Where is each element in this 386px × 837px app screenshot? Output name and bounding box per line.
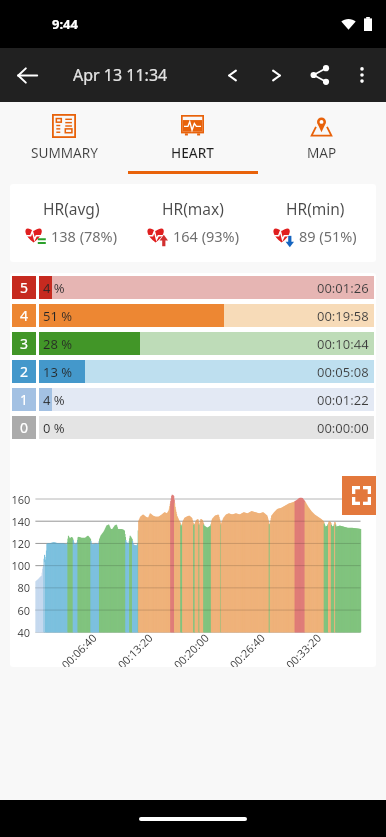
- staticText: 00:00:00: [317, 419, 369, 437]
- button[interactable]: Previous: [210, 53, 254, 97]
- staticText: 00:01:26: [317, 279, 369, 297]
- staticText: 00:05:08: [317, 363, 369, 381]
- staticText: 1: [20, 390, 29, 409]
- staticText: 138 (78%): [51, 226, 117, 246]
- staticText: Apr 13 11:34: [73, 64, 168, 86]
- button[interactable]: HEART: [128, 99, 257, 173]
- button[interactable]: Next: [254, 53, 298, 97]
- staticText: 13 %: [43, 363, 73, 381]
- button[interactable]: Back: [0, 48, 54, 102]
- staticText: 164 (93%): [173, 226, 239, 246]
- button[interactable]: MAP: [257, 99, 386, 173]
- staticText: 4: [20, 306, 29, 325]
- staticText: 89 (51%): [299, 226, 357, 246]
- staticText: HEART: [171, 143, 214, 162]
- staticText: HR(avg): [43, 198, 100, 219]
- staticText: 00:10:44: [317, 335, 369, 353]
- staticText: 00:01:22: [317, 391, 369, 409]
- button[interactable]: More options: [342, 55, 382, 95]
- staticText: 00:19:58: [317, 307, 369, 325]
- staticText: 3: [20, 334, 29, 353]
- staticText: 2: [20, 362, 29, 381]
- staticText: HR(max): [162, 198, 224, 219]
- button[interactable]: SUMMARY: [0, 99, 128, 173]
- staticText: 5: [20, 278, 29, 297]
- staticText: 51 %: [43, 307, 73, 325]
- staticText: 4 %: [43, 279, 65, 297]
- button[interactable]: Fullscreen: [342, 476, 376, 515]
- staticText: 0 %: [43, 419, 65, 437]
- staticText: 4 %: [43, 391, 65, 409]
- staticText: 9:44: [52, 15, 78, 33]
- staticText: 28 %: [43, 335, 73, 353]
- staticText: MAP: [307, 143, 337, 162]
- staticText: 0: [20, 418, 29, 437]
- staticText: SUMMARY: [31, 143, 98, 162]
- staticText: HR(min): [286, 198, 345, 219]
- button[interactable]: Share: [298, 53, 342, 97]
